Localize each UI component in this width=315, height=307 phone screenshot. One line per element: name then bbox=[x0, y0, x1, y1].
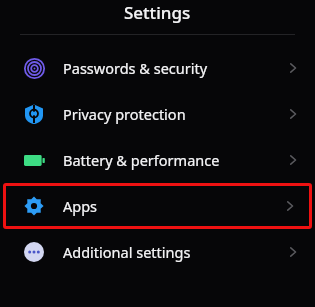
staticText: Passwords & security bbox=[63, 58, 208, 78]
button[interactable]: Passwords & security bbox=[0, 45, 315, 91]
staticText: Additional settings bbox=[63, 242, 191, 262]
button[interactable]: Battery & performance bbox=[0, 137, 315, 183]
staticText: Privacy protection bbox=[63, 104, 186, 124]
staticText: Settings bbox=[124, 1, 191, 24]
other: Open bbox=[285, 106, 301, 122]
other: Open bbox=[282, 198, 298, 214]
staticText: Battery & performance bbox=[63, 150, 220, 170]
button[interactable]: Apps bbox=[3, 183, 312, 229]
other: Open bbox=[285, 60, 301, 76]
button[interactable]: Additional settings bbox=[0, 229, 315, 275]
staticText: Apps bbox=[63, 196, 98, 216]
other: Open bbox=[285, 152, 301, 168]
button[interactable]: Privacy protection bbox=[0, 91, 315, 137]
other: Open bbox=[285, 244, 301, 260]
